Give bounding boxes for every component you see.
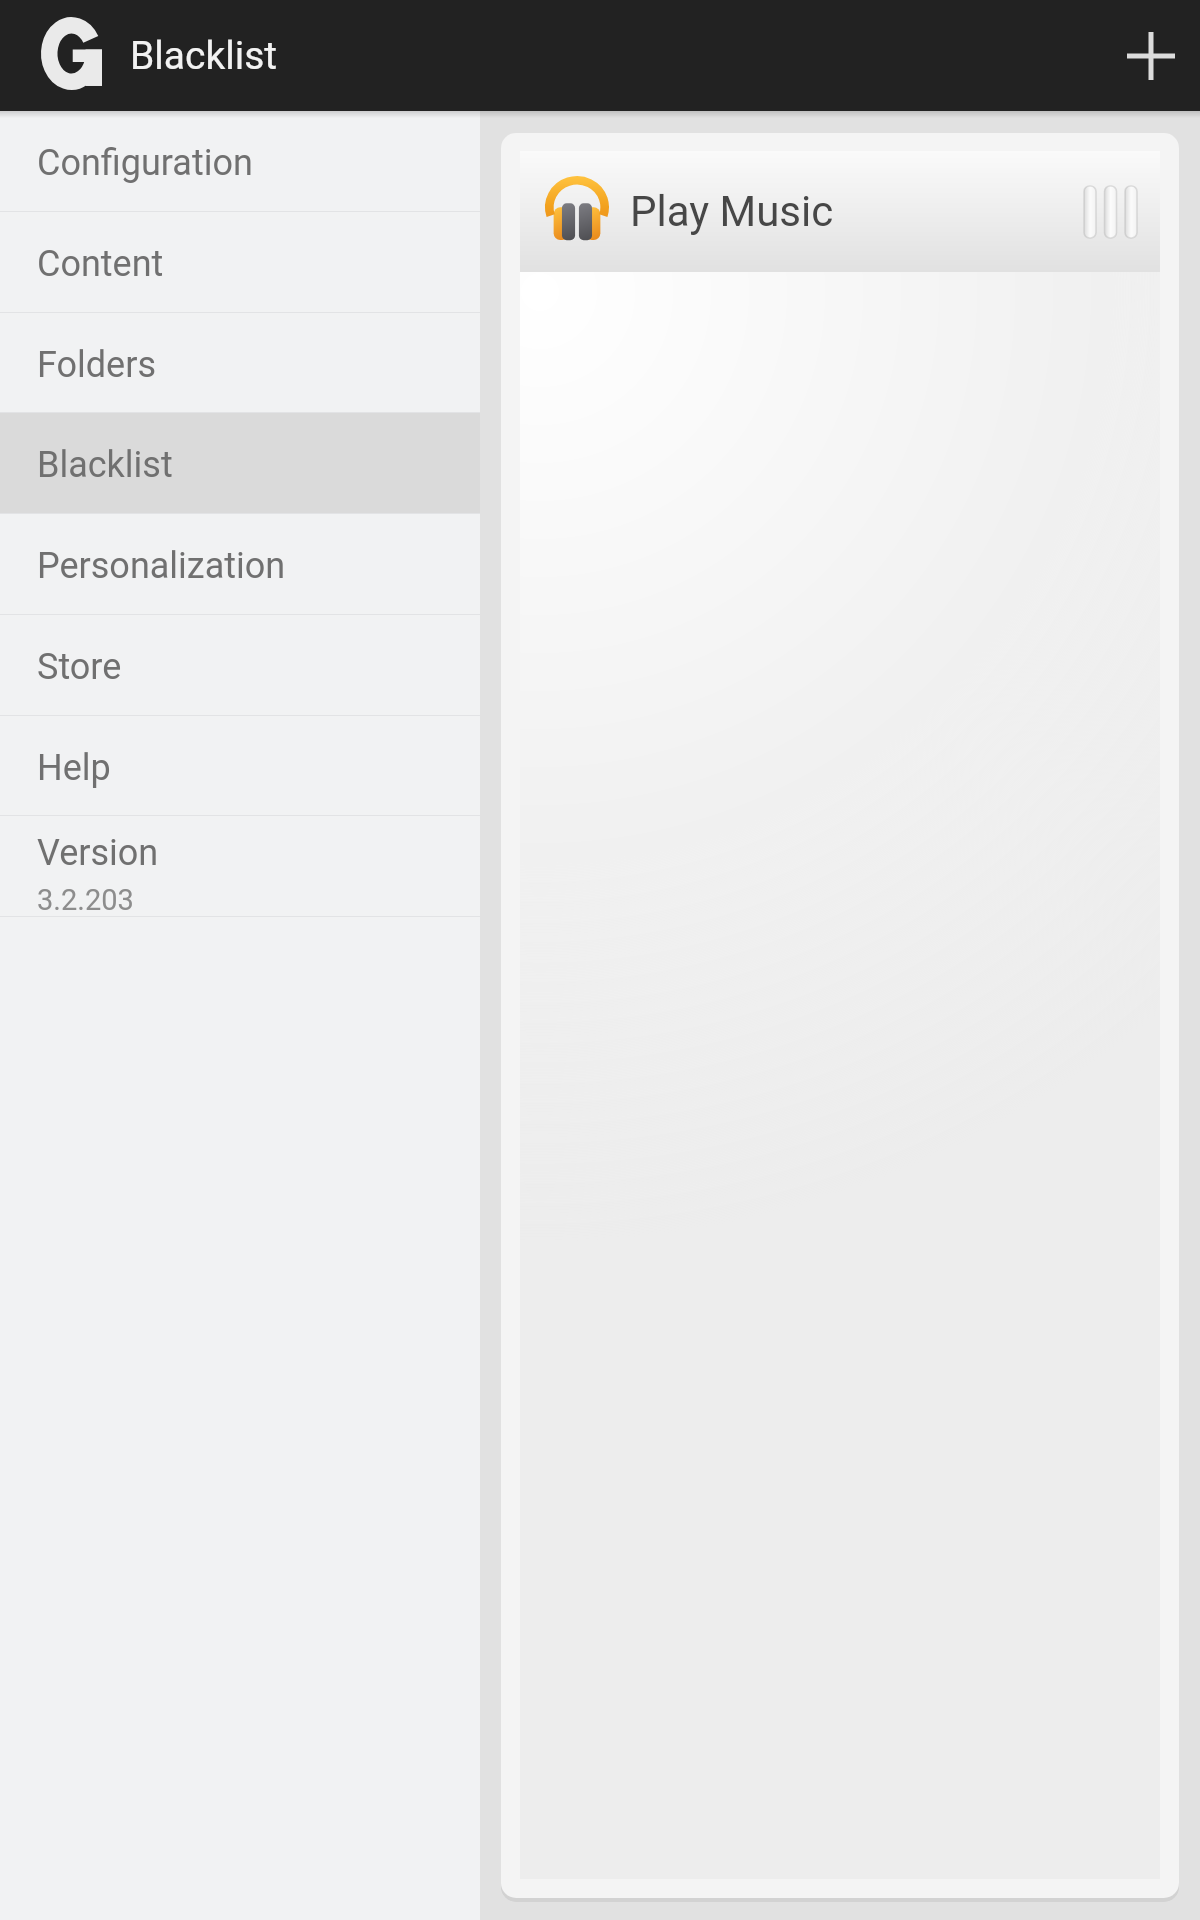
button[interactable]: Blacklist <box>0 413 480 514</box>
button[interactable]: Content <box>0 212 480 313</box>
staticText: Store <box>37 646 122 688</box>
button[interactable]: Configuration <box>0 111 480 212</box>
button[interactable]: Help <box>0 716 480 816</box>
staticText: Blacklist <box>37 444 173 486</box>
staticText: Help <box>37 747 111 789</box>
button[interactable]: Folders <box>0 313 480 413</box>
staticText: Content <box>37 243 164 285</box>
staticText: 3.2.203 <box>37 883 134 916</box>
staticText: Personalization <box>37 545 286 587</box>
button[interactable]: Play Music <box>520 151 1160 272</box>
staticText: Configuration <box>37 142 253 184</box>
button[interactable]: Version <box>0 816 480 917</box>
staticText: Blacklist <box>130 33 278 79</box>
staticText: Play Music <box>630 187 834 236</box>
button[interactable]: Personalization <box>0 514 480 615</box>
button[interactable]: Add <box>1099 4 1200 107</box>
button[interactable]: Store <box>0 615 480 716</box>
staticText: Folders <box>37 344 156 386</box>
staticText: Version <box>37 832 159 874</box>
